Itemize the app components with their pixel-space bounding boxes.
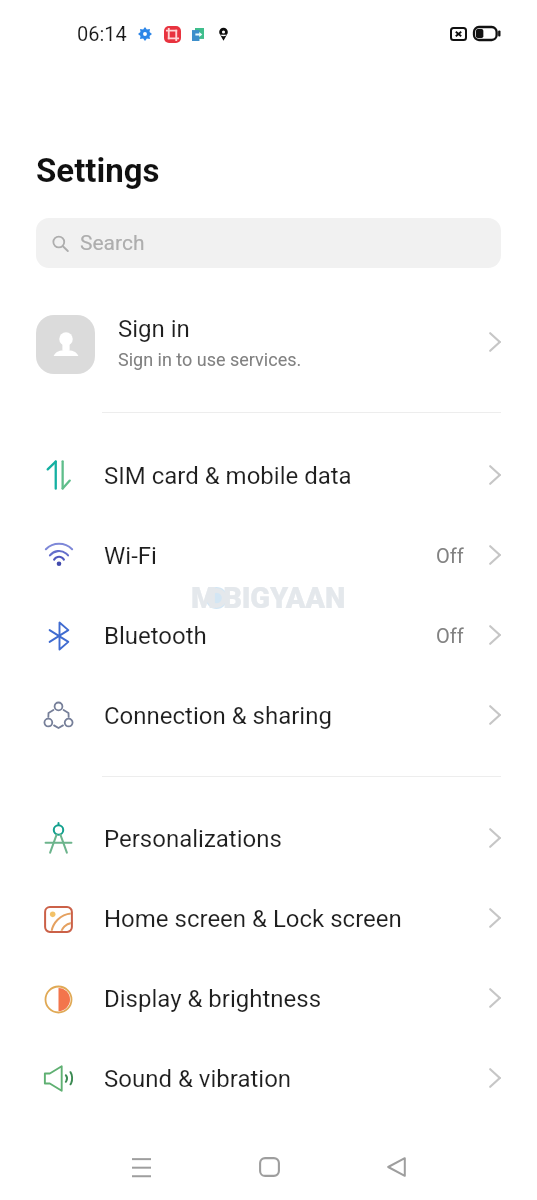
- button[interactable]: Connection & sharing: [0, 676, 537, 756]
- staticText: SIM card & mobile data: [104, 462, 489, 490]
- button[interactable]: SIM card & mobile data: [0, 436, 537, 516]
- staticText: Bluetooth: [104, 622, 436, 650]
- button[interactable]: Recent apps: [116, 1142, 166, 1192]
- staticText: M BIGYAAN: [191, 581, 346, 615]
- staticText: Settings: [36, 151, 160, 190]
- button[interactable]: Home screen & Lock screen: [0, 879, 537, 959]
- staticText: Connection & sharing: [104, 702, 489, 730]
- staticText: Personalizations: [104, 825, 489, 853]
- button[interactable]: Search: [36, 218, 501, 268]
- staticText: Off: [436, 544, 464, 567]
- staticText: Sign in: [118, 315, 190, 343]
- staticText: Search: [80, 231, 145, 256]
- staticText: 06:14: [77, 22, 127, 45]
- button[interactable]: Sound & vibration: [0, 1039, 537, 1119]
- button[interactable]: Bluetooth: [0, 596, 537, 676]
- button[interactable]: Back: [371, 1142, 421, 1192]
- button[interactable]: Home: [244, 1142, 294, 1192]
- button[interactable]: Personalizations: [0, 799, 537, 879]
- staticText: Display & brightness: [104, 985, 489, 1013]
- staticText: Home screen & Lock screen: [104, 905, 489, 933]
- button[interactable]: Wi-Fi: [0, 516, 537, 596]
- staticText: Wi-Fi: [104, 542, 436, 570]
- staticText: Sound & vibration: [104, 1065, 489, 1093]
- button[interactable]: Sign in: [0, 306, 537, 386]
- staticText: Off: [436, 624, 464, 647]
- button[interactable]: Display & brightness: [0, 959, 537, 1039]
- staticText: Sign in to use services.: [118, 349, 302, 370]
